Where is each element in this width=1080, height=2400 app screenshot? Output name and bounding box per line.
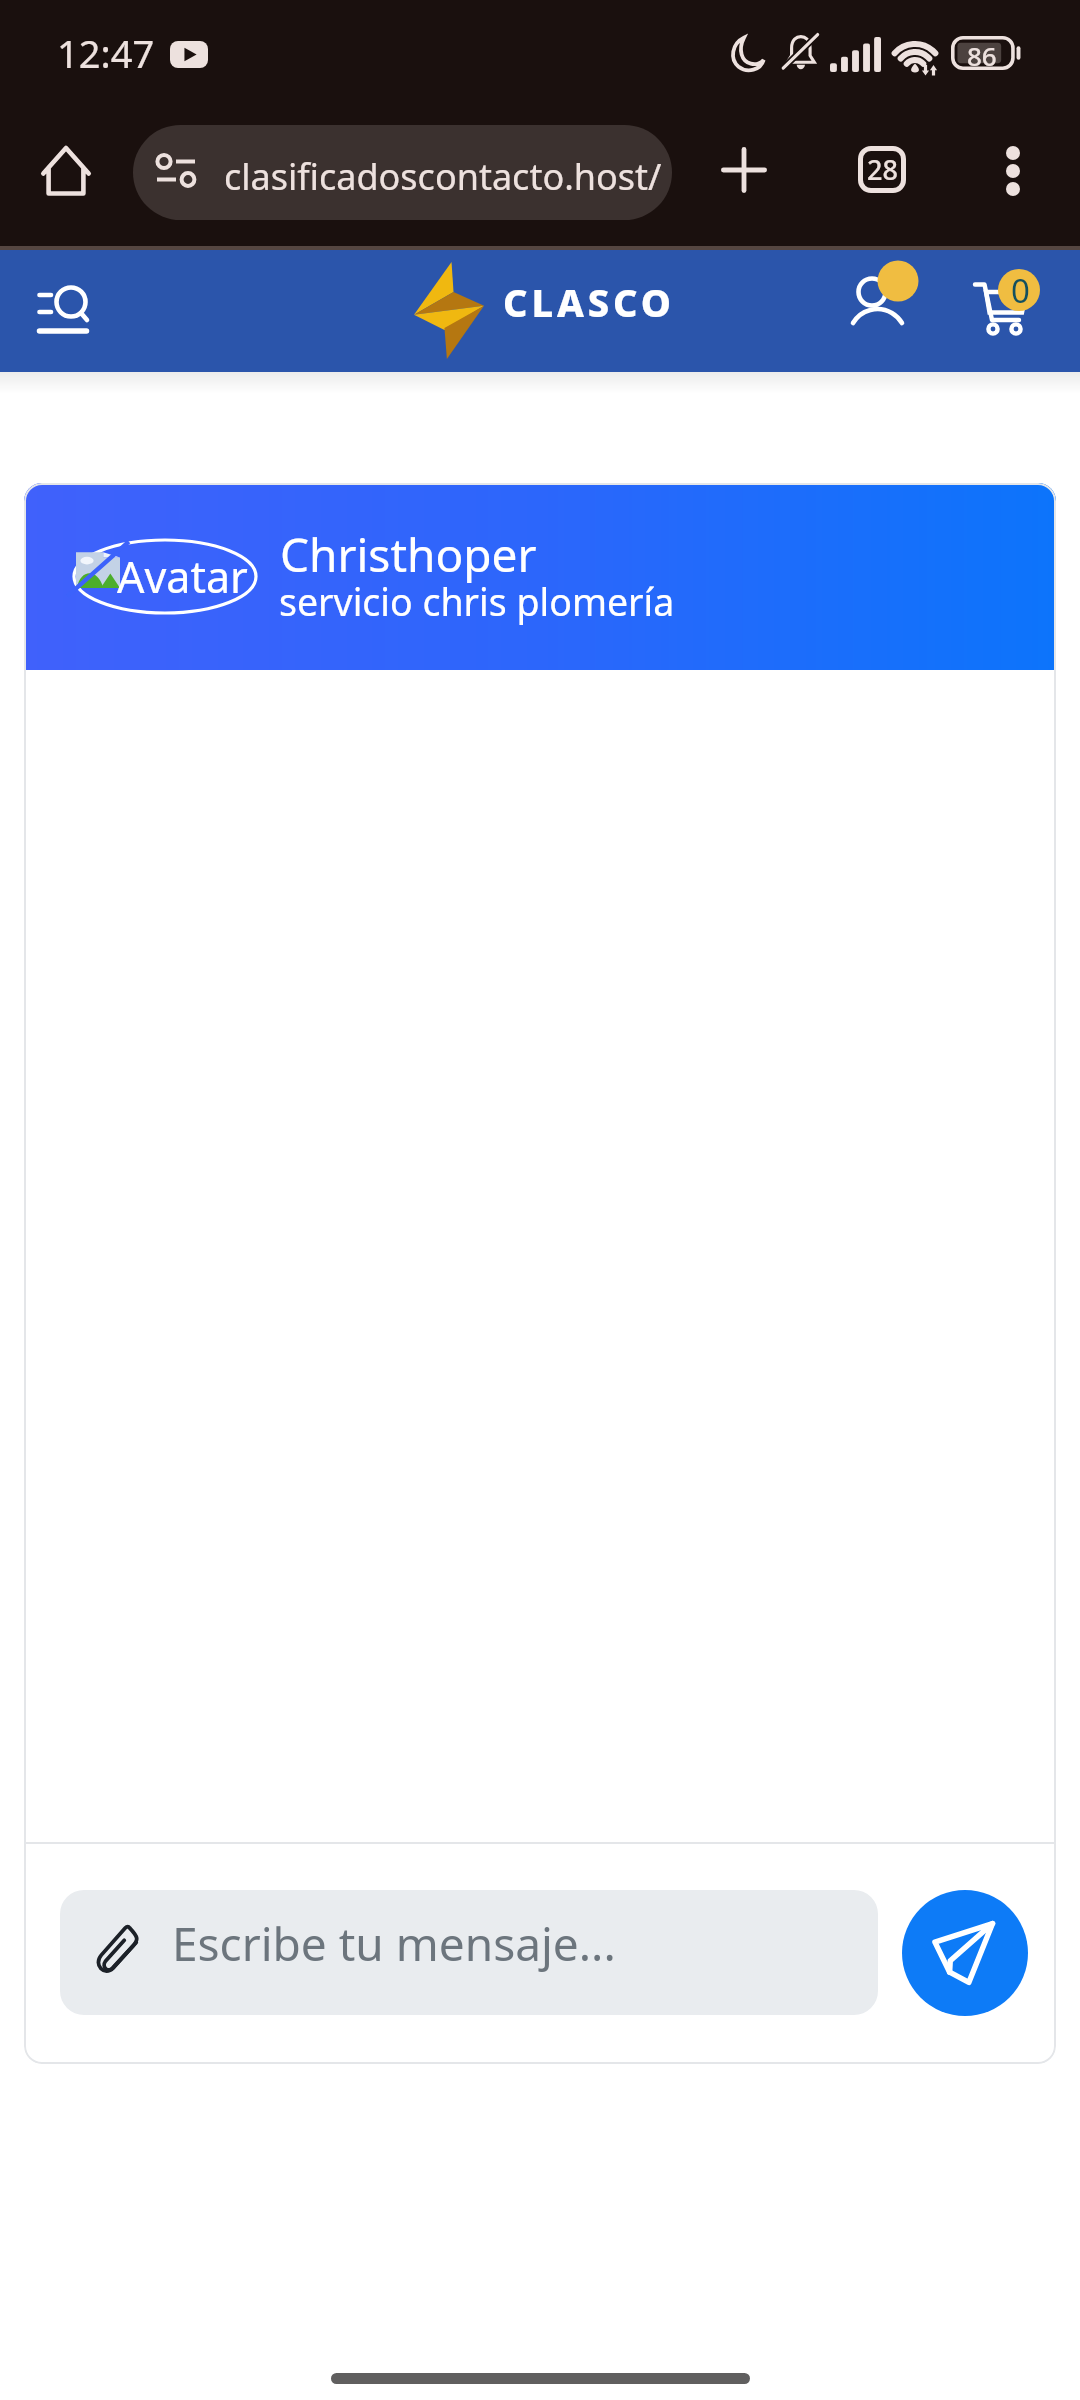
button[interactable]: Escribe tu mensaje... <box>60 1890 878 2015</box>
staticText: 86 <box>967 38 997 72</box>
staticText: servicio chris plomería <box>279 576 675 627</box>
button[interactable]: New tab <box>700 121 790 211</box>
button[interactable]: Send message <box>902 1890 1028 2016</box>
staticText: Christhoper <box>280 523 537 586</box>
button[interactable]: Tabs <box>836 121 926 211</box>
button[interactable]: Home <box>16 120 116 220</box>
button[interactable]: Avatar <box>24 483 1056 670</box>
button[interactable]: clasificadoscontacto.host/ <box>133 125 672 220</box>
staticText: 0 <box>1011 268 1030 313</box>
button[interactable]: Search <box>13 262 113 362</box>
button[interactable]: Cart <box>963 257 1059 353</box>
button[interactable]: More options <box>968 121 1058 211</box>
staticText: CLASCO <box>503 276 675 328</box>
button[interactable]: Account <box>840 257 936 353</box>
staticText: 12:47 <box>57 27 155 79</box>
staticText: clasificadoscontacto.host/ <box>224 152 662 201</box>
staticText: Escribe tu mensaje... <box>172 1912 616 1975</box>
staticText: 28 <box>867 151 898 188</box>
staticText: Avatar <box>117 547 248 606</box>
